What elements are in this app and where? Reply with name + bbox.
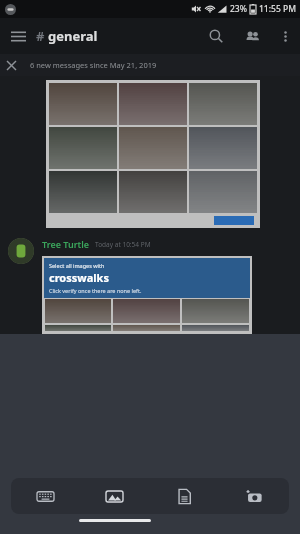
- button[interactable]: Captcha tile 5: [113, 325, 180, 331]
- button[interactable]: More options: [270, 21, 300, 51]
- button[interactable]: Keyboard: [11, 478, 80, 514]
- button[interactable]: Captcha tile 3: [189, 83, 257, 125]
- staticText: Tree Turtle: [42, 238, 90, 250]
- button[interactable]: Captcha tile 4: [49, 127, 117, 169]
- button[interactable]: Members: [234, 18, 270, 54]
- button[interactable]: Captcha tile 9: [189, 171, 257, 213]
- staticText: #: [36, 27, 45, 45]
- staticText: 6 new messages since May 21, 2019: [30, 60, 157, 70]
- button[interactable]: Dismiss: [0, 54, 22, 76]
- staticText: 11:55 PM: [259, 3, 296, 15]
- staticText: crosswalks: [49, 270, 109, 285]
- staticText: Select all images with: [49, 262, 105, 269]
- button[interactable]: Camera: [219, 478, 289, 514]
- button[interactable]: Captcha tile 5: [119, 127, 187, 169]
- button[interactable]: Captcha tile 8: [119, 171, 187, 213]
- button[interactable]: Captcha tile 6: [182, 325, 249, 331]
- button[interactable]: Captcha tile 1: [45, 299, 111, 323]
- staticText: Click verify once there are none left.: [49, 287, 142, 294]
- button[interactable]: Tree Turtle avatar: [8, 238, 34, 264]
- button[interactable]: Gallery: [80, 478, 149, 514]
- button[interactable]: Captcha tile 6: [189, 127, 257, 169]
- button[interactable]: Captcha tile 7: [49, 171, 117, 213]
- staticText: general: [48, 27, 98, 45]
- button[interactable]: Open navigation menu: [0, 18, 36, 54]
- button[interactable]: Document: [149, 478, 219, 514]
- button[interactable]: Captcha tile 4: [45, 325, 111, 331]
- staticText: 23%: [230, 3, 247, 15]
- button[interactable]: Captcha tile 2: [119, 83, 187, 125]
- button[interactable]: Captcha tile 3: [182, 299, 249, 323]
- staticText: Today at 10:54 PM: [95, 240, 151, 249]
- button[interactable]: Captcha tile 1: [49, 83, 117, 125]
- button[interactable]: Search: [198, 18, 234, 54]
- button[interactable]: Captcha tile 2: [113, 299, 180, 323]
